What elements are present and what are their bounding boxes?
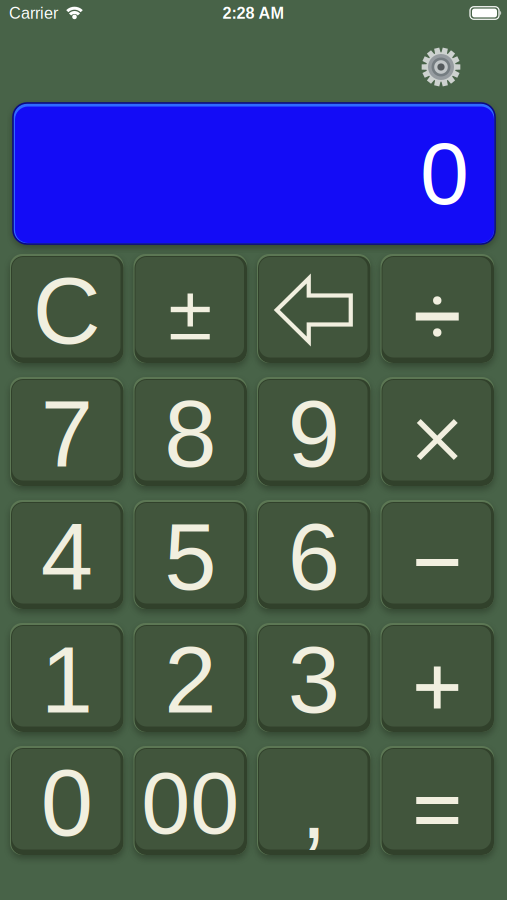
button[interactable] — [380, 623, 494, 732]
button[interactable] — [420, 46, 462, 88]
button[interactable]: 4 — [10, 500, 123, 609]
button[interactable]: 8 — [133, 377, 247, 486]
staticText: 0 — [420, 124, 469, 223]
button[interactable]: 9 — [257, 377, 370, 486]
button[interactable]: 1 — [10, 623, 123, 732]
staticText: , — [301, 753, 327, 858]
button[interactable] — [133, 254, 247, 363]
button[interactable]: , — [257, 746, 370, 855]
staticText: Carrier — [9, 4, 58, 22]
staticText: 00 — [141, 754, 239, 852]
staticText: 8 — [164, 381, 216, 486]
button[interactable]: 5 — [133, 500, 247, 609]
button[interactable]: 3 — [257, 623, 370, 732]
button[interactable] — [380, 254, 494, 363]
staticText: 6 — [288, 504, 340, 609]
staticText: 9 — [288, 381, 340, 486]
button[interactable]: 7 — [10, 377, 123, 486]
button[interactable] — [380, 377, 494, 486]
button[interactable]: 00 — [133, 746, 247, 855]
staticText: 3 — [288, 627, 340, 732]
button[interactable] — [380, 746, 494, 855]
staticText: 4 — [41, 504, 93, 609]
button[interactable] — [380, 500, 494, 609]
staticText: 5 — [164, 504, 216, 609]
button[interactable] — [257, 254, 370, 363]
staticText: 2 — [164, 627, 216, 732]
button[interactable]: 6 — [257, 500, 370, 609]
button[interactable]: C — [10, 254, 123, 363]
staticText: 2:28 AM — [222, 4, 284, 22]
button[interactable]: 2 — [133, 623, 247, 732]
button[interactable]: 0 — [10, 746, 123, 855]
staticText: 1 — [41, 627, 93, 732]
staticText: 7 — [41, 381, 93, 486]
staticText: C — [33, 258, 101, 363]
staticText: 0 — [41, 750, 93, 855]
